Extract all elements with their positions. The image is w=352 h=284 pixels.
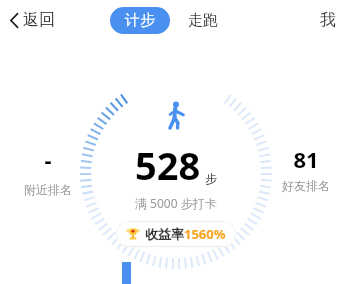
- staticText: 81: [293, 144, 319, 174]
- staticText: 返回: [23, 10, 55, 30]
- button[interactable]: 返回: [6, 6, 58, 34]
- button[interactable]: 我: [314, 6, 342, 34]
- staticText: 走跑: [188, 11, 218, 30]
- button[interactable]: 81: [268, 140, 344, 197]
- button[interactable]: 收益率1560%: [116, 221, 236, 247]
- button[interactable]: -: [10, 140, 86, 201]
- staticText: 收益率1560%: [145, 225, 226, 243]
- staticText: 我: [320, 10, 336, 30]
- button[interactable]: 计步: [110, 7, 170, 34]
- staticText: -: [44, 144, 52, 174]
- staticText: 528: [135, 139, 201, 191]
- button[interactable]: 走跑: [182, 7, 224, 34]
- staticText: 计步: [125, 11, 155, 30]
- staticText: 步: [205, 171, 217, 186]
- staticText: 好友排名: [282, 178, 330, 193]
- staticText: 附近排名: [24, 182, 72, 197]
- staticText: 满 5000 步打卡: [135, 195, 217, 211]
